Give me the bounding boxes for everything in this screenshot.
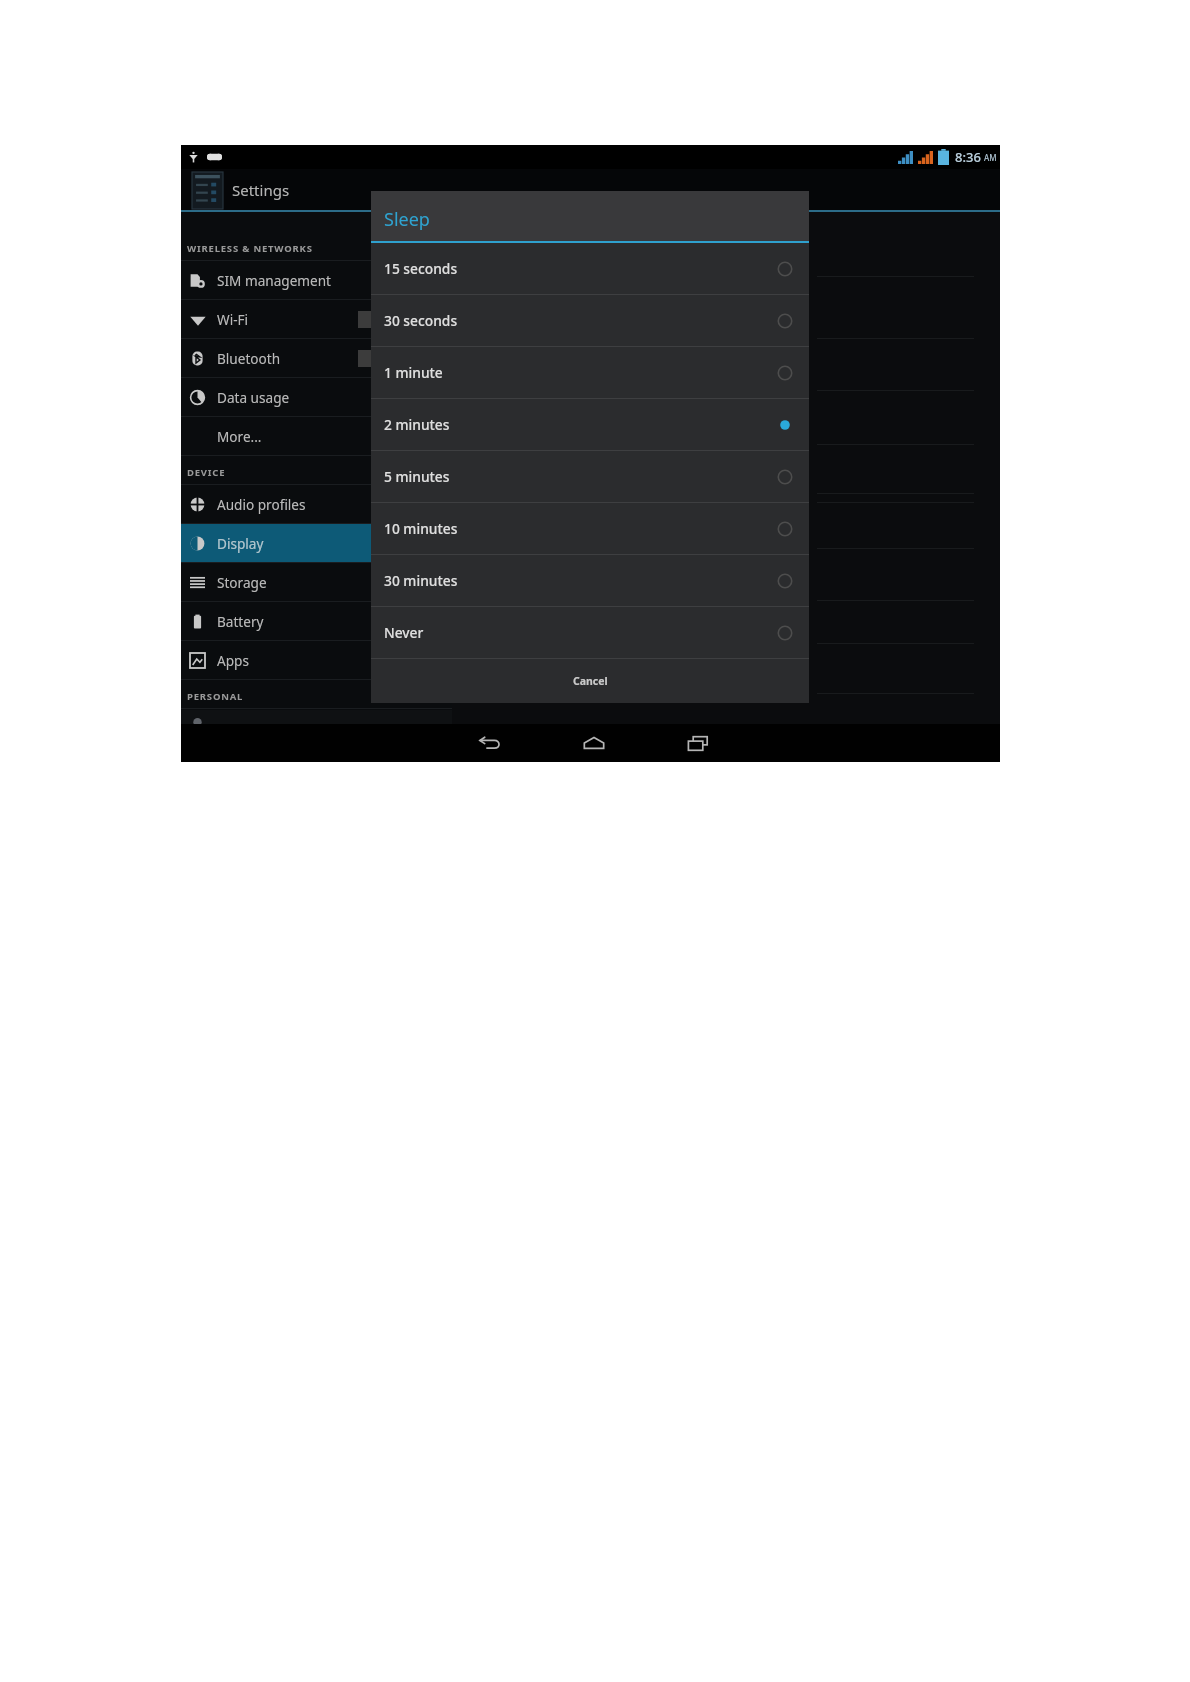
button[interactable]: 10 minutes [371, 503, 809, 554]
button[interactable]: 2 minutes [371, 399, 809, 450]
staticText: More... [217, 427, 262, 446]
staticText: Wi-Fi [217, 310, 249, 329]
staticText: Never [384, 623, 424, 642]
staticText: 8:36 [955, 148, 981, 166]
button[interactable]: 30 minutes [371, 555, 809, 606]
staticText: WIRELESS & NETWORKS [187, 242, 313, 255]
staticText: PERSONAL [187, 690, 244, 703]
staticText: Settings [232, 180, 290, 200]
staticText: DEVICE [187, 466, 226, 479]
button[interactable]: Wi-Fi [181, 300, 452, 338]
button[interactable]: Recents [669, 724, 727, 762]
button[interactable]: SIM management [181, 261, 452, 299]
staticText: 15 seconds [384, 259, 458, 278]
button[interactable]: Battery [181, 602, 452, 640]
button[interactable]: 30 seconds [371, 295, 809, 346]
button[interactable]: Settings app icon [192, 172, 223, 209]
button[interactable]: 1 minute [371, 347, 809, 398]
button[interactable]: Apps [181, 641, 452, 679]
button[interactable]: Toggle Wi-Fi [358, 311, 418, 328]
button[interactable]: Display [181, 524, 452, 562]
staticText: Bluetooth [217, 349, 281, 368]
staticText: AM [984, 152, 997, 163]
staticText: 5 minutes [384, 467, 450, 486]
button[interactable]: Never [371, 607, 809, 658]
staticText: Audio profiles [217, 495, 306, 514]
staticText: 2 minutes [384, 415, 450, 434]
staticText: Cancel [573, 674, 608, 688]
button[interactable]: More... [181, 417, 452, 455]
staticText: Battery [217, 612, 264, 631]
button[interactable]: Data usage [181, 378, 452, 416]
button[interactable]: 5 minutes [371, 451, 809, 502]
button[interactable]: Storage [181, 563, 452, 601]
button[interactable]: Bluetooth [181, 339, 452, 377]
staticText: 30 seconds [384, 311, 458, 330]
staticText: SIM management [217, 271, 332, 290]
staticText: Storage [217, 573, 267, 592]
staticText: 10 minutes [384, 519, 458, 538]
button[interactable]: Toggle Bluetooth [358, 350, 418, 367]
staticText: Sleep [384, 207, 430, 232]
button[interactable]: Cancel [371, 659, 809, 703]
button[interactable]: Back [461, 724, 519, 762]
staticText: Apps [217, 651, 249, 670]
button[interactable]: Audio profiles [181, 485, 452, 523]
staticText: Data usage [217, 388, 290, 407]
staticText: 1 minute [384, 363, 443, 382]
button[interactable]: 15 seconds [371, 243, 809, 294]
button[interactable]: Home [565, 724, 623, 762]
staticText: 30 minutes [384, 571, 458, 590]
staticText: Display [217, 534, 264, 553]
